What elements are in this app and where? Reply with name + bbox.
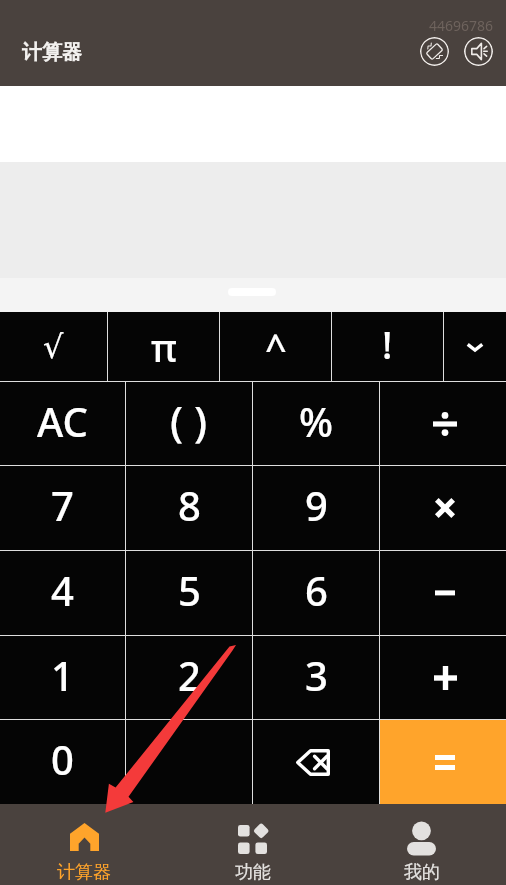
staticText: 2 [178, 648, 201, 702]
button[interactable]: 1 [0, 636, 125, 719]
staticText: 7 [51, 478, 74, 532]
button[interactable]: 8 [126, 466, 252, 550]
button[interactable]: 功能 [168, 804, 337, 885]
button[interactable]: Sound [464, 37, 493, 66]
button[interactable]: √ [0, 312, 107, 381]
button[interactable] [126, 720, 252, 804]
staticText: 44696786 [429, 16, 494, 35]
button[interactable]: ! [332, 312, 443, 381]
staticText: AC [37, 394, 88, 448]
staticText: % [299, 394, 334, 448]
staticText: ! [382, 318, 393, 370]
staticText: 6 [305, 563, 328, 617]
staticText: 功能 [235, 861, 271, 884]
button[interactable]: Equals [380, 720, 506, 804]
staticText: 3 [305, 648, 328, 702]
button[interactable]: Backspace [253, 720, 379, 804]
button[interactable]: More functions [444, 312, 506, 381]
button[interactable]: Divide [380, 382, 506, 465]
staticText: 计算器 [57, 861, 111, 884]
button[interactable]: 6 [253, 551, 379, 635]
button[interactable]: 4 [0, 551, 125, 635]
button[interactable]: 计算器 [0, 804, 168, 885]
button[interactable]: AC [0, 382, 125, 465]
staticText: 1 [51, 648, 74, 702]
staticText: √ [43, 328, 64, 365]
button[interactable]: Add [380, 636, 506, 719]
staticText: π [151, 321, 177, 373]
button[interactable]: 5 [126, 551, 252, 635]
button[interactable]: π [108, 312, 219, 381]
button[interactable]: Subtract [380, 551, 506, 635]
staticText: ( ) [170, 392, 208, 449]
staticText: 我的 [404, 861, 440, 884]
button[interactable]: 我的 [337, 804, 506, 885]
button[interactable]: Vibration [420, 37, 449, 66]
button[interactable]: 2 [126, 636, 252, 719]
button[interactable]: 0 [0, 720, 125, 804]
button[interactable]: 7 [0, 466, 125, 550]
staticText: 计算器 [22, 40, 82, 65]
button[interactable]: Multiply [380, 466, 506, 550]
staticText: 4 [51, 563, 74, 617]
button[interactable]: 3 [253, 636, 379, 719]
button[interactable]: ( ) [126, 382, 252, 465]
button[interactable]: 9 [253, 466, 379, 550]
staticText: 8 [178, 478, 201, 532]
staticText: ^ [265, 321, 287, 373]
button[interactable]: ^ [220, 312, 331, 381]
staticText: 0 [51, 732, 74, 786]
button[interactable]: % [253, 382, 379, 465]
staticText: 5 [178, 563, 201, 617]
staticText: 9 [305, 478, 328, 532]
